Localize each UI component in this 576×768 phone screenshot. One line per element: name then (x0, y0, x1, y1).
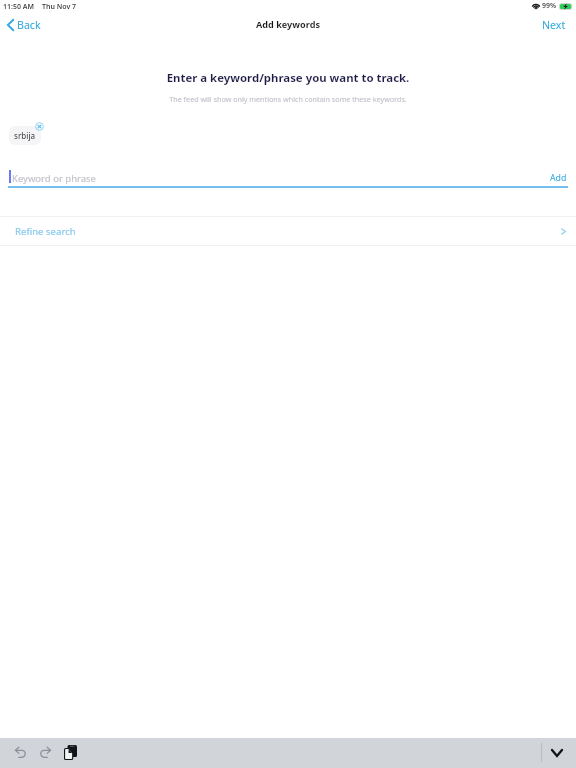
button[interactable]: Redo (33, 740, 57, 764)
button[interactable]: Refine search (0, 217, 576, 246)
button[interactable]: Undo (8, 740, 32, 764)
staticText: srbija (14, 130, 36, 141)
button[interactable]: srbija (9, 126, 41, 145)
staticText: 99% (542, 1, 557, 11)
staticText: Next (542, 18, 566, 32)
staticText: Refine search (15, 225, 561, 238)
button[interactable]: Back (0, 14, 51, 36)
staticText: 11:50 AM (3, 2, 34, 12)
staticText: Add (550, 172, 567, 184)
staticText: Add keywords (0, 18, 576, 30)
button[interactable]: Remove keyword srbija (35, 122, 44, 131)
button[interactable]: Next (528, 14, 576, 36)
button[interactable]: Hide keyboard (544, 738, 570, 768)
staticText: Keyword or phrase (12, 172, 96, 185)
staticText: The feed will show only mentions which c… (0, 94, 576, 104)
button[interactable]: Paste (58, 740, 82, 764)
staticText: Enter a keyword/phrase you want to track… (0, 70, 576, 86)
staticText: Thu Nov 7 (42, 2, 77, 12)
staticText: Back (17, 18, 41, 32)
button[interactable]: Add (546, 170, 571, 186)
